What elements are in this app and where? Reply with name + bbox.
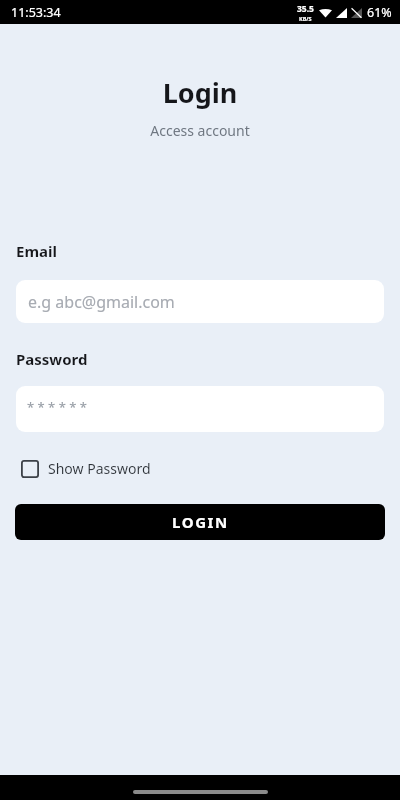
- button[interactable]: * * * * * *: [16, 386, 384, 432]
- staticText: KB/S: [299, 15, 312, 22]
- staticText: Password: [16, 349, 88, 369]
- staticText: 11:53:34: [11, 4, 61, 21]
- staticText: * * * * * *: [27, 398, 87, 416]
- staticText: Access account: [0, 121, 400, 140]
- button[interactable]: Show Password: [18, 455, 154, 482]
- staticText: e.g abc@gmail.com: [28, 291, 175, 313]
- other: Home gesture bar: [133, 790, 268, 794]
- staticText: Show Password: [48, 459, 151, 478]
- staticText: Email: [16, 241, 57, 261]
- staticText: 35.5: [297, 3, 314, 15]
- staticText: Login: [0, 74, 400, 111]
- staticText: LOGIN: [172, 512, 229, 532]
- button[interactable]: e.g abc@gmail.com: [16, 280, 384, 323]
- button[interactable]: LOGIN: [15, 504, 385, 540]
- staticText: 61%: [367, 4, 392, 21]
